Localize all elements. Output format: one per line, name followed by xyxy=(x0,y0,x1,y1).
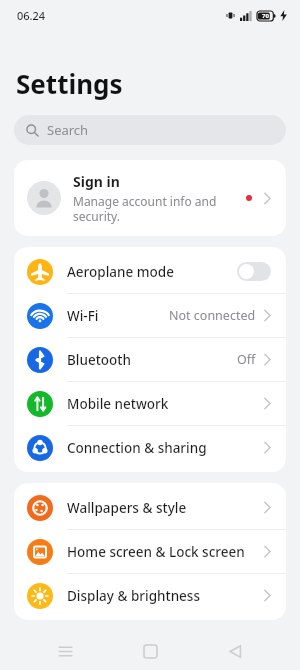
button[interactable]: Recent apps xyxy=(45,632,85,670)
staticText: Search xyxy=(47,121,89,139)
staticText: 70 xyxy=(262,12,269,20)
button[interactable]: Mobile network xyxy=(14,382,286,425)
button[interactable]: Home screen & Lock screen xyxy=(14,530,286,573)
button[interactable]: Search xyxy=(14,115,286,145)
staticText: Settings xyxy=(16,66,123,101)
button[interactable]: Display & brightness xyxy=(14,574,286,617)
button[interactable]: Home xyxy=(130,632,170,670)
button[interactable]: Wi-Fi xyxy=(14,294,286,337)
staticText: Home screen & Lock screen xyxy=(67,543,264,561)
staticText: Mobile network xyxy=(67,395,264,413)
staticText: Bluetooth xyxy=(67,351,237,369)
staticText: Sign in xyxy=(73,172,120,191)
button[interactable]: Back xyxy=(215,632,255,670)
button[interactable]: Sign in xyxy=(14,160,286,236)
button[interactable]: Bluetooth xyxy=(14,338,286,381)
staticText: Connection & sharing xyxy=(67,439,264,457)
staticText: Manage account info and security. xyxy=(73,193,217,224)
staticText: 06.24 xyxy=(17,8,46,23)
button[interactable]: Aeroplane mode toggle xyxy=(237,262,271,281)
button[interactable]: Aeroplane mode xyxy=(14,250,286,293)
staticText: Off xyxy=(237,351,256,368)
staticText: Not connected xyxy=(169,307,256,324)
staticText: Wallpapers & style xyxy=(67,499,264,517)
staticText: Display & brightness xyxy=(67,587,264,605)
button[interactable]: Wallpapers & style xyxy=(14,486,286,529)
staticText: Aeroplane mode xyxy=(67,263,237,281)
staticText: Wi-Fi xyxy=(67,307,169,325)
button[interactable]: Connection & sharing xyxy=(14,426,286,469)
